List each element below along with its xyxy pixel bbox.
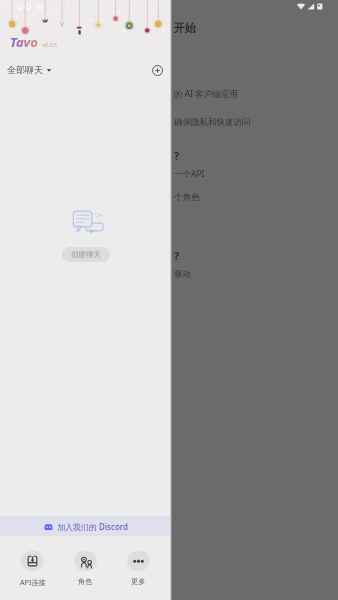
button[interactable]: 创建聊天 <box>62 247 110 262</box>
button[interactable]: 新建聊天 <box>148 61 166 79</box>
button[interactable]: 加入我们的 Discord <box>0 516 171 536</box>
staticText: 确保隐私和快速访问 <box>174 117 251 128</box>
button[interactable]: 全部聊天 <box>8 61 53 78</box>
staticText: Tavo <box>10 33 38 51</box>
staticText: 驱动 <box>174 269 191 280</box>
button[interactable]: API连接 <box>6 536 59 587</box>
staticText: 一个API <box>174 168 205 180</box>
staticText: ? <box>174 248 180 263</box>
staticText: 更多 <box>131 577 146 586</box>
staticText: 开始 <box>174 21 196 35</box>
staticText: ? <box>174 148 180 163</box>
staticText: 加入我们的 Discord <box>57 521 128 532</box>
staticText: 角色 <box>78 577 93 586</box>
staticText: v0.65 <box>42 41 57 49</box>
staticText: 个角色 <box>174 192 200 203</box>
button[interactable]: 角色 <box>59 536 112 586</box>
button[interactable]: 更多 <box>112 536 165 586</box>
staticText: 全部聊天 <box>7 64 43 75</box>
staticText: API连接 <box>20 577 46 587</box>
staticText: 的 AI 客户端应用 <box>174 88 238 100</box>
staticText: 创建聊天 <box>71 250 101 259</box>
